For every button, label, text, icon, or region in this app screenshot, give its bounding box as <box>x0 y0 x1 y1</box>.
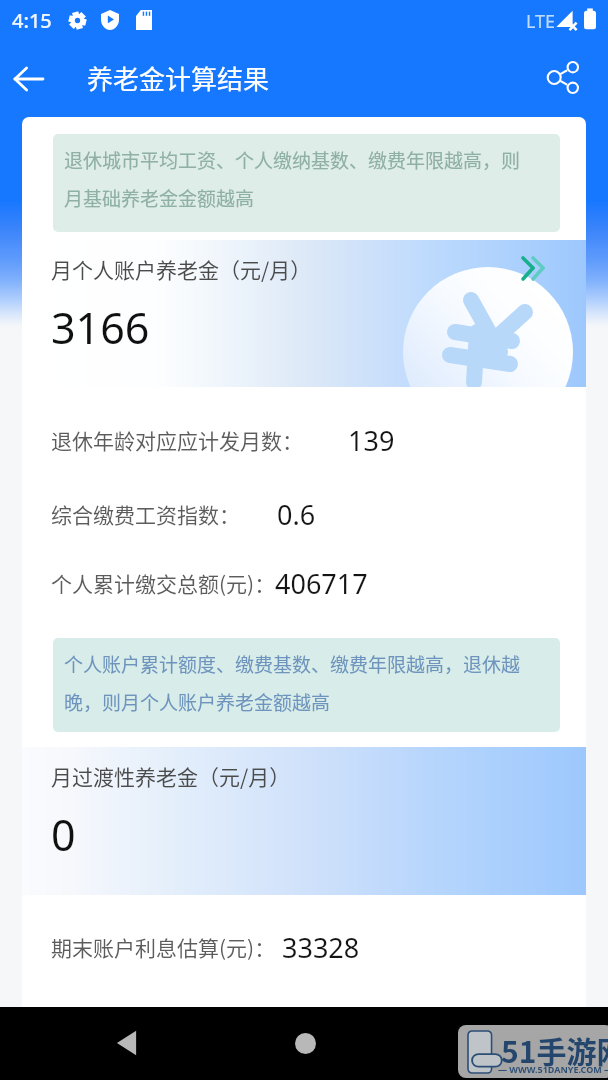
staticText: — WWW.51DANYE.COM — <box>498 1063 608 1075</box>
staticText: 139 <box>348 422 395 459</box>
button[interactable]: Home <box>280 1018 330 1068</box>
staticText: 月过渡性养老金（元/月） <box>51 761 291 791</box>
staticText: 4:15 <box>12 7 52 34</box>
button[interactable]: Share <box>538 52 588 102</box>
staticText: 0.6 <box>277 496 316 533</box>
staticText: 406717 <box>275 565 368 602</box>
staticText: 养老金计算结果 <box>87 59 270 97</box>
staticText: 退休城市平均工资、个人缴纳基数、缴费年限越高，则 月基础养老金金额越高 <box>64 146 521 212</box>
staticText: 综合缴费工资指数： <box>51 499 240 529</box>
staticText: 退休年龄对应应计发月数： <box>51 425 303 455</box>
button[interactable]: Recent apps <box>455 1018 505 1068</box>
staticText: 0 <box>51 805 76 864</box>
staticText: 个人账户累计额度、缴费基数、缴费年限越高，退休越 晚，则月个人账户养老金额越高 <box>64 650 521 716</box>
button[interactable]: 月过渡性养老金（元/月） <box>22 747 586 895</box>
staticText: 33328 <box>282 929 360 966</box>
staticText: 3166 <box>51 298 150 357</box>
staticText: 月个人账户养老金（元/月） <box>51 254 312 284</box>
staticText: LTE <box>526 9 556 34</box>
button[interactable]: Back <box>4 54 53 103</box>
staticText: 个人累计缴交总额(元)： <box>51 568 276 598</box>
button[interactable]: 月个人账户养老金（元/月） <box>22 240 586 387</box>
staticText: 51手游网 <box>501 1028 608 1071</box>
button[interactable]: Back <box>102 1018 152 1068</box>
staticText: 期末账户利息估算(元)： <box>51 932 276 962</box>
